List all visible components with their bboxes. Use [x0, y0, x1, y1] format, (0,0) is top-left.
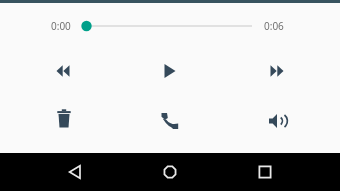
- button[interactable]: Fast forward: [257, 51, 297, 91]
- button[interactable]: Call: [150, 101, 190, 141]
- staticText: 0:06: [264, 19, 284, 33]
- button[interactable]: Rewind: [43, 51, 83, 91]
- button[interactable]: Delete: [44, 101, 84, 141]
- staticText: 0:00: [51, 19, 71, 33]
- button[interactable]: Back: [56, 153, 94, 191]
- button[interactable]: Seek bar: [80, 17, 256, 35]
- button[interactable]: Play: [150, 51, 190, 91]
- button[interactable]: Volume: [258, 101, 298, 141]
- button[interactable]: Home: [151, 153, 189, 191]
- button[interactable]: Recents: [246, 153, 284, 191]
